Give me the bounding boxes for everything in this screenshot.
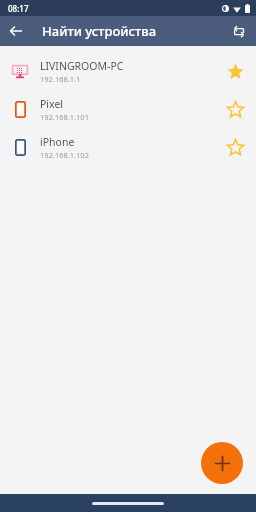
staticText: Найти устройства [42,22,157,40]
button[interactable]: LIVINGROOM-PC [0,52,256,90]
staticText: 192.168.1.102 [40,150,89,160]
button[interactable]: Back [3,18,29,44]
button[interactable]: Favorite Pixel [221,95,249,123]
staticText: iPhone [40,135,75,149]
staticText: 192.168.1.101 [40,112,89,122]
button[interactable]: iPhone [0,128,256,166]
staticText: 08:17 [8,3,29,14]
staticText: LIVINGROOM-PC [40,59,124,73]
button[interactable]: Favorite iPhone [221,133,249,161]
button[interactable]: Unfavorite LIVINGROOM-PC [221,57,249,85]
button[interactable]: Add device [201,442,243,484]
staticText: 192.168.1.1 [40,74,81,84]
staticText: Pixel [40,97,64,111]
button[interactable]: Pixel [0,90,256,128]
button[interactable]: Refresh [225,18,251,44]
